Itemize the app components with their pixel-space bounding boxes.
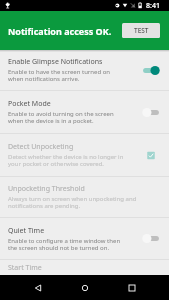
staticText: Enable to configure a time window then t…: [8, 237, 125, 252]
staticText: Enable Glimpse Notifications: [8, 57, 103, 67]
staticText: Quiet Time: [8, 226, 45, 236]
staticText: Always turn on screen when unpocketing a…: [8, 195, 151, 210]
button[interactable]: TEST: [122, 23, 160, 38]
staticText: 8:41: [146, 1, 160, 11]
staticText: Detect whether the device is no longer i…: [8, 153, 125, 168]
staticText: Unpocketing Threshold: [8, 184, 85, 194]
button[interactable]: Recent apps: [121, 277, 142, 298]
button[interactable]: Enable Glimpse Notifications: [0, 50, 169, 90]
button[interactable]: Back: [27, 277, 48, 298]
staticText: Enable to avoid turning on the screen wh…: [8, 110, 125, 125]
button[interactable]: Start Time: [0, 260, 169, 275]
staticText: Start Time: [8, 263, 42, 273]
staticText: Pocket Mode: [8, 99, 51, 109]
staticText: Detect Unpocketing: [8, 142, 74, 152]
button[interactable]: Unpocketing Threshold: [0, 177, 169, 217]
button[interactable]: Quiet Time: [0, 218, 169, 259]
staticText: Notification access OK.: [8, 25, 112, 37]
button[interactable]: Detect Unpocketing: [0, 134, 169, 176]
button[interactable]: Pocket Mode: [0, 91, 169, 133]
staticText: TEST: [134, 26, 149, 35]
button[interactable]: Home: [74, 277, 95, 298]
staticText: Enable to have the screen turned on when…: [8, 68, 125, 83]
